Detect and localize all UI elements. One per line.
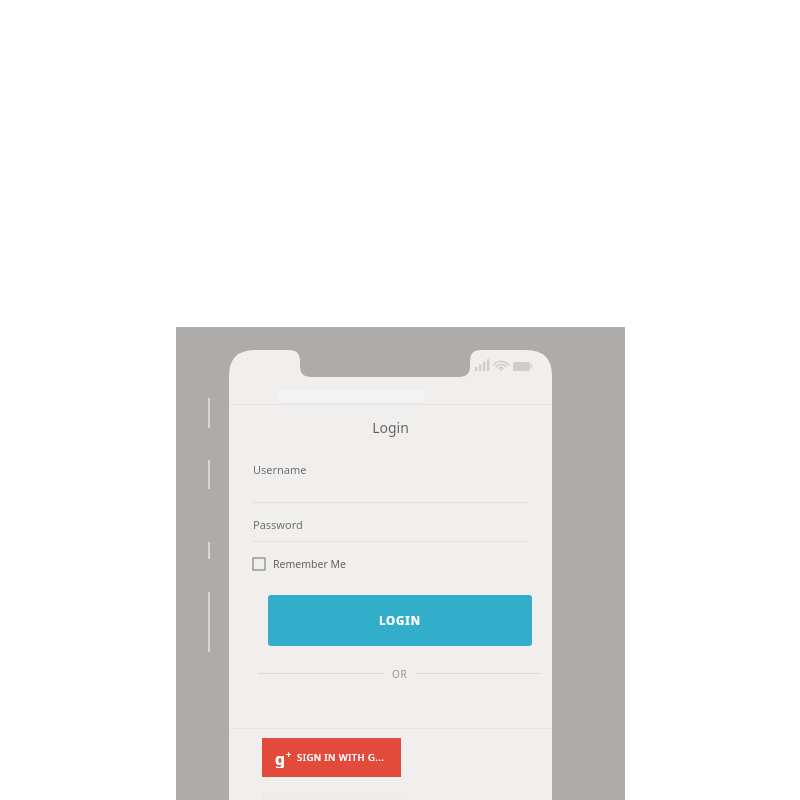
button[interactable]: Password [253, 500, 528, 532]
staticText: Login [372, 418, 409, 437]
staticText: LOGIN [379, 613, 421, 629]
staticText: Username [253, 462, 307, 477]
staticText: + [286, 748, 292, 760]
button[interactable]: g [262, 738, 401, 777]
staticText: Password [253, 517, 303, 532]
button[interactable]: LOGIN [268, 595, 532, 646]
staticText: Remember Me [273, 557, 346, 571]
staticText: OR [392, 667, 408, 681]
button[interactable]: Remember Me [253, 552, 346, 576]
staticText: g [275, 748, 286, 768]
button[interactable]: Username [253, 462, 528, 494]
staticText: SIGN IN WITH G... [297, 751, 385, 764]
